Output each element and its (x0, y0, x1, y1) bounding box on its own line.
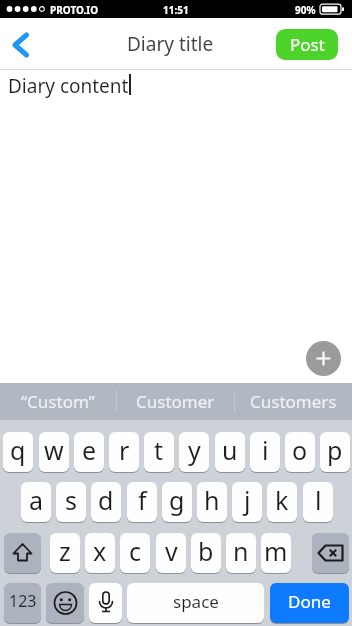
staticText: c (129, 534, 142, 568)
staticText: o (292, 433, 308, 467)
staticText: g (169, 483, 185, 517)
button[interactable]: k (267, 482, 297, 522)
staticText: t (154, 433, 164, 467)
button[interactable] (312, 533, 349, 573)
staticText: Customers (250, 390, 337, 413)
staticText: h (204, 483, 220, 517)
button[interactable]: g (162, 482, 192, 522)
button[interactable]: l (303, 482, 333, 522)
staticText: f (138, 483, 147, 517)
staticText: m (264, 534, 288, 568)
staticText: u (222, 433, 238, 467)
button[interactable]: Post (276, 29, 338, 60)
staticText: Done (288, 590, 331, 613)
staticText: r (119, 433, 130, 467)
button[interactable]: d (91, 482, 121, 522)
button[interactable]: a (21, 482, 51, 522)
staticText: w (44, 433, 64, 467)
button[interactable]: y (179, 432, 209, 472)
staticText: Customer (136, 390, 215, 413)
button[interactable]: r (109, 432, 139, 472)
button[interactable]: “Custom” (0, 383, 116, 420)
button[interactable]: h (197, 482, 227, 522)
staticText: j (244, 483, 251, 517)
button[interactable]: b (191, 533, 221, 573)
button[interactable]: Customers (235, 383, 352, 420)
button[interactable]: t (144, 432, 174, 472)
staticText: a (29, 483, 44, 517)
button[interactable]: o (285, 432, 315, 472)
button[interactable]: Done (270, 583, 349, 623)
button[interactable]: q (3, 432, 33, 472)
staticText: d (98, 483, 114, 517)
staticText: s (65, 483, 77, 517)
button[interactable] (89, 583, 122, 623)
staticText: Diary content (8, 73, 129, 99)
button[interactable]: c (120, 533, 150, 573)
staticText: v (165, 534, 178, 568)
button[interactable] (0, 18, 40, 69)
staticText: k (275, 483, 289, 517)
button[interactable]: j (232, 482, 262, 522)
staticText: 90% (295, 3, 316, 17)
button[interactable]: n (226, 533, 256, 573)
staticText: z (59, 534, 71, 568)
button[interactable]: e (74, 432, 104, 472)
button[interactable]: z (50, 533, 80, 573)
button[interactable]: u (215, 432, 245, 472)
button[interactable] (306, 341, 341, 376)
staticText: n (233, 534, 249, 568)
staticText: Post (290, 33, 325, 56)
button[interactable]: Customer (117, 383, 234, 420)
staticText: p (327, 433, 343, 467)
staticText: “Custom” (21, 390, 95, 413)
staticText: q (10, 433, 26, 467)
staticText: b (198, 534, 214, 568)
button[interactable]: i (250, 432, 280, 472)
staticText: space (173, 590, 219, 613)
staticText: 11:51 (163, 3, 189, 17)
button[interactable]: f (127, 482, 157, 522)
staticText: e (82, 433, 97, 467)
staticText: y (188, 433, 201, 467)
button[interactable]: s (56, 482, 86, 522)
button[interactable]: m (261, 533, 291, 573)
staticText: Diary title (127, 31, 214, 57)
button[interactable]: w (39, 432, 69, 472)
button[interactable]: p (320, 432, 350, 472)
button[interactable] (4, 533, 41, 573)
button[interactable] (46, 583, 84, 623)
staticText: PROTO.IO (50, 3, 99, 17)
button[interactable]: v (156, 533, 186, 573)
staticText: 123 (9, 590, 37, 612)
button[interactable]: x (85, 533, 115, 573)
staticText: l (315, 483, 322, 517)
staticText: i (262, 433, 269, 467)
staticText: x (93, 534, 107, 568)
button[interactable]: space (127, 583, 264, 623)
button[interactable]: 123 (4, 583, 41, 623)
